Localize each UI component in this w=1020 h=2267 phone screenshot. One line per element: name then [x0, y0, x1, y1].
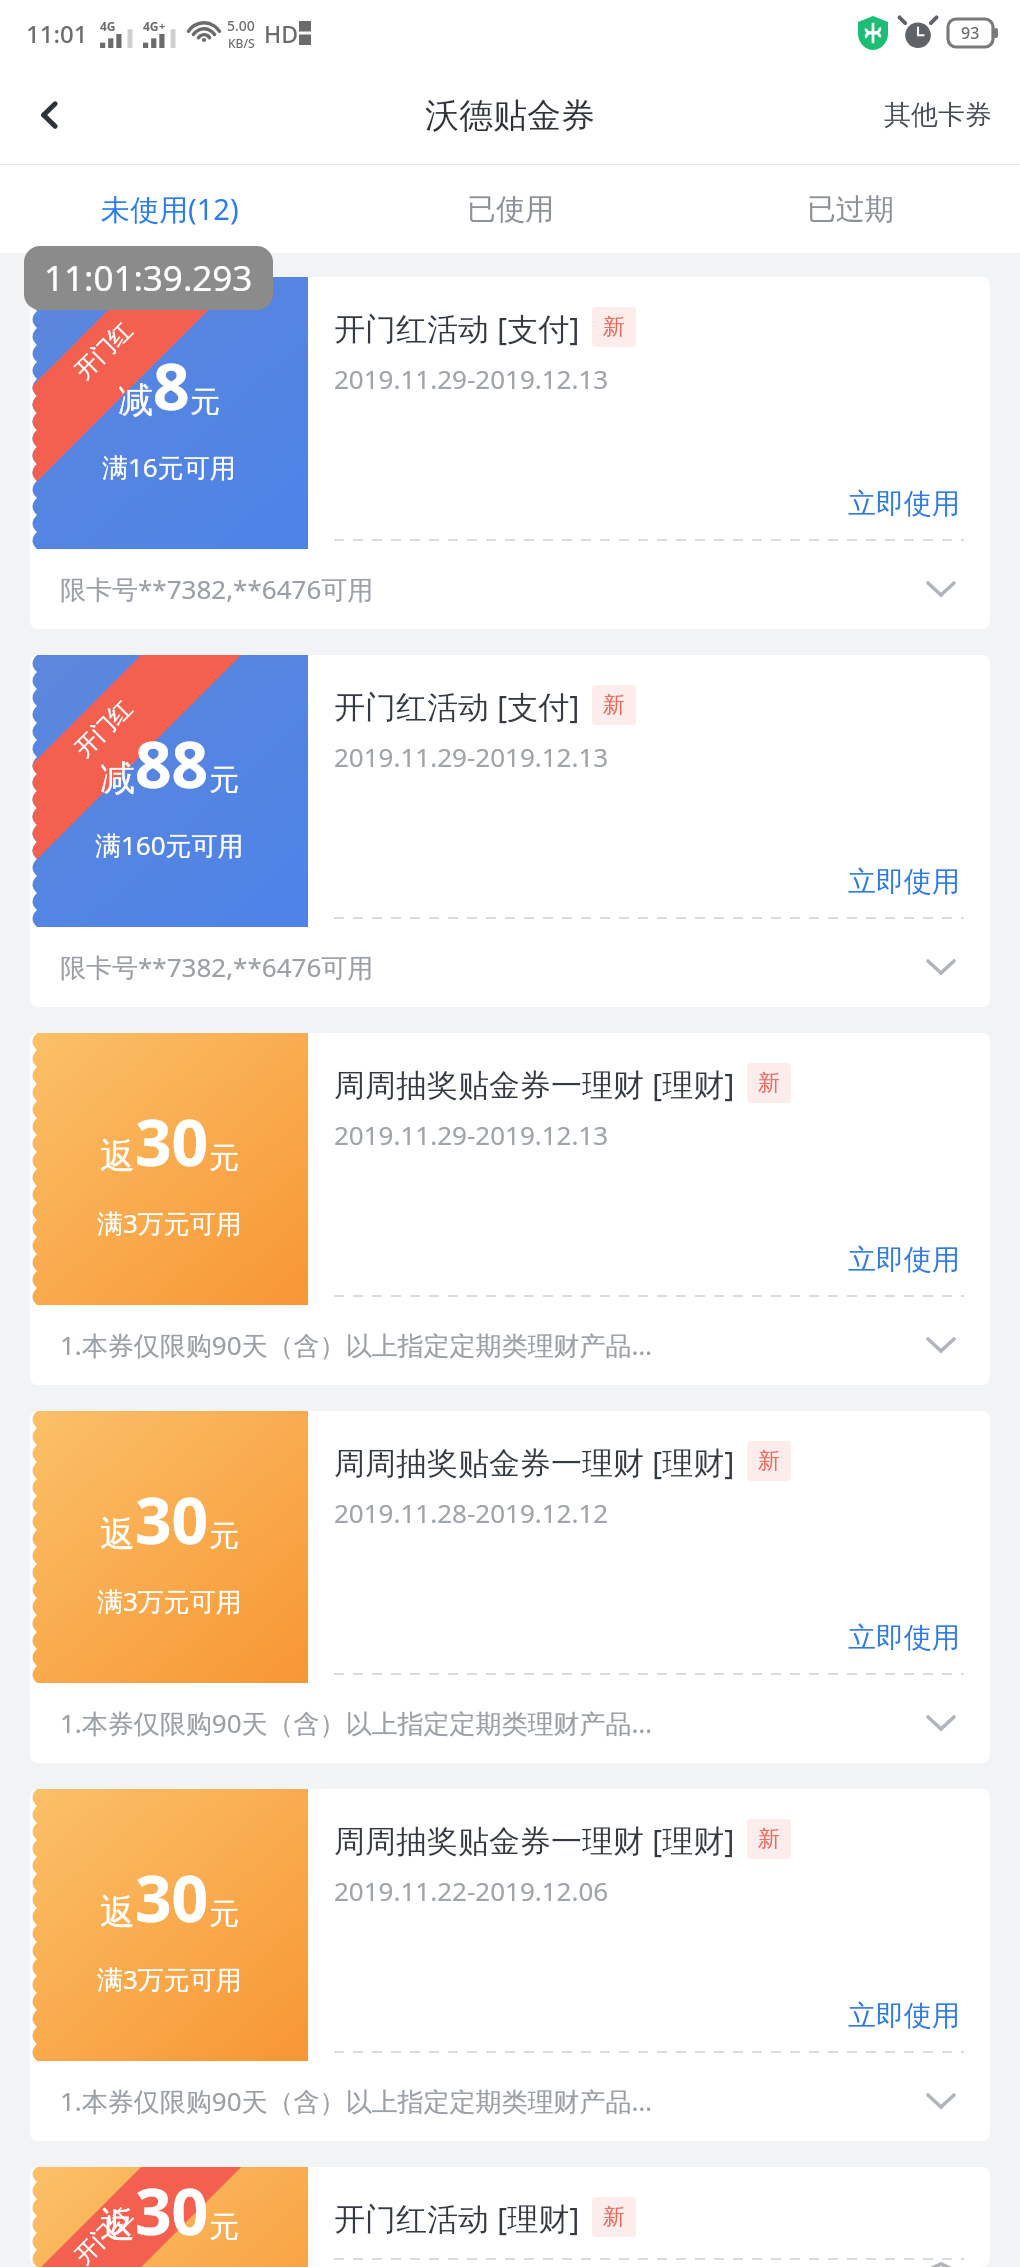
button[interactable]: 已过期	[680, 165, 1020, 253]
button[interactable]: 展开详情	[916, 2076, 966, 2126]
staticText: 2019.11.28-2019.12.12	[334, 1495, 609, 1530]
button[interactable]: 返回	[0, 66, 100, 164]
staticText: 4G	[143, 18, 159, 34]
button[interactable]: 立即使用	[844, 860, 964, 903]
staticText: 满160元可用	[95, 827, 244, 863]
button[interactable]: 返	[30, 1033, 990, 1385]
staticText: 新	[758, 1069, 780, 1097]
staticText: +	[159, 18, 166, 33]
staticText: 11:01	[26, 17, 88, 50]
staticText: 30	[135, 1098, 209, 1185]
staticText: 元	[209, 1895, 239, 1933]
button[interactable]: 展开详情	[916, 942, 966, 992]
staticText: 88	[135, 720, 209, 807]
staticText: 93	[961, 22, 980, 44]
staticText: 新	[603, 313, 625, 341]
staticText: 未使用(12)	[101, 189, 239, 229]
staticText: 新	[603, 2203, 625, 2231]
staticText: 2019.11.29-2019.12.13	[334, 2251, 609, 2259]
staticText: 30	[135, 1476, 209, 1563]
staticText: 开门红	[69, 2201, 138, 2267]
button[interactable]: 未使用(12)	[0, 165, 340, 253]
button[interactable]: 开门红	[30, 277, 990, 629]
staticText: 开门红	[69, 316, 138, 385]
staticText: 周周抽奖贴金券一理财 [理财]	[334, 1063, 735, 1105]
staticText: 11:01:39.293	[44, 254, 253, 302]
staticText: 元	[209, 1517, 239, 1555]
staticText: 立即使用	[848, 864, 960, 899]
button[interactable]: 返	[30, 1789, 990, 2141]
staticText: 返	[100, 1512, 135, 1556]
staticText: 开门红	[69, 694, 138, 763]
staticText: 立即使用	[848, 1998, 960, 2033]
staticText: 2019.11.22-2019.12.06	[334, 1873, 609, 1908]
staticText: 周周抽奖贴金券一理财 [理财]	[334, 1441, 735, 1483]
staticText: 立即使用	[848, 486, 960, 521]
staticText: 立即使用	[848, 1620, 960, 1655]
staticText: 限卡号**7382,**6476可用	[60, 949, 902, 985]
staticText: 已过期	[807, 191, 894, 228]
staticText: 已使用	[467, 191, 554, 228]
staticText: 满16元可用	[102, 449, 236, 485]
button[interactable]: 展开详情	[916, 1698, 966, 1748]
staticText: 满3万元可用	[97, 1961, 242, 1997]
staticText: 元	[209, 2208, 239, 2246]
staticText: 元	[209, 761, 239, 799]
staticText: KB/S	[228, 35, 255, 51]
button[interactable]: 立即使用	[844, 1994, 964, 2037]
staticText: 周周抽奖贴金券一理财 [理财]	[334, 1819, 735, 1861]
button[interactable]: 立即使用	[844, 1238, 964, 1281]
button[interactable]: 开门红	[30, 655, 990, 1007]
staticText: 30	[135, 2167, 209, 2254]
button[interactable]: 展开详情	[916, 1320, 966, 1370]
button[interactable]: 立即使用	[844, 482, 964, 525]
staticText: 2019.11.29-2019.12.13	[334, 361, 609, 396]
staticText: 返	[100, 1134, 135, 1178]
staticText: 元	[209, 1139, 239, 1177]
staticText: 满3万元可用	[97, 1583, 242, 1619]
staticText: 1.本券仅限购90天（含）以上指定定期类理财产品…	[60, 2083, 902, 2119]
staticText: 其他卡券	[884, 98, 992, 132]
staticText: 开门红活动 [支付]	[334, 307, 580, 349]
staticText: 5.00	[227, 16, 255, 35]
staticText: 元	[190, 383, 220, 421]
staticText: HD	[264, 18, 299, 49]
button[interactable]: 展开详情	[916, 564, 966, 614]
staticText: 8	[153, 342, 190, 429]
staticText: 开门红活动 [理财]	[334, 2197, 580, 2239]
button[interactable]: 已使用	[340, 165, 680, 253]
staticText: 返	[100, 2203, 135, 2247]
staticText: 减	[100, 756, 135, 800]
staticText: 4G	[100, 18, 116, 34]
staticText: 限卡号**7382,**6476可用	[60, 571, 902, 607]
staticText: 新	[603, 691, 625, 719]
staticText: 30	[135, 1854, 209, 1941]
staticText: 开门红活动 [支付]	[334, 685, 580, 727]
staticText: 减	[118, 378, 153, 422]
button[interactable]: 立即使用	[844, 1616, 964, 1659]
staticText: 立即使用	[848, 1242, 960, 1277]
staticText: 沃德贴金券	[425, 94, 595, 137]
staticText: 满3万元可用	[97, 1205, 242, 1241]
button[interactable]: 开门红	[30, 2167, 990, 2267]
staticText: 2019.11.29-2019.12.13	[334, 1117, 609, 1152]
staticText: 新	[758, 1447, 780, 1475]
staticText: 2019.11.29-2019.12.13	[334, 739, 609, 774]
staticText: 新	[758, 1825, 780, 1853]
button[interactable]: 返	[30, 1411, 990, 1763]
staticText: 1.本券仅限购90天（含）以上指定定期类理财产品…	[60, 1705, 902, 1741]
staticText: 1.本券仅限购90天（含）以上指定定期类理财产品…	[60, 1327, 902, 1363]
button[interactable]: 其他卡券	[856, 66, 1020, 164]
staticText: 返	[100, 1890, 135, 1934]
